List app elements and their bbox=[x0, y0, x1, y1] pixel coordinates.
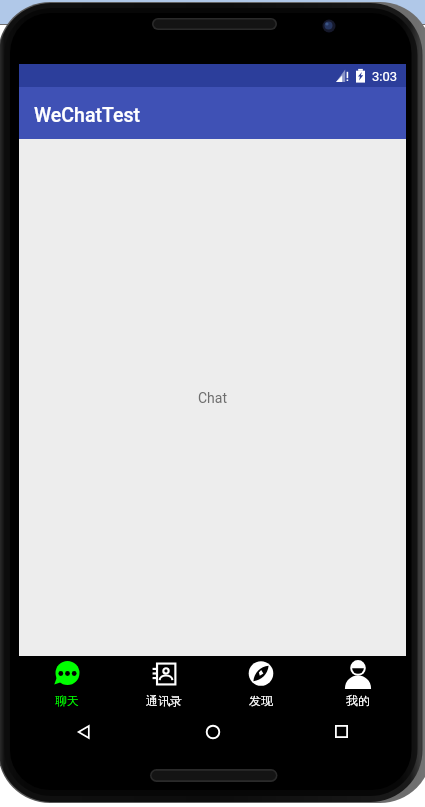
staticText: 聊天 bbox=[55, 693, 79, 708]
button[interactable]: 聊天 bbox=[19, 656, 115, 709]
button[interactable]: Recent apps bbox=[277, 709, 406, 754]
button[interactable]: Home bbox=[148, 709, 277, 754]
staticText: WeChatTest bbox=[34, 104, 140, 127]
staticText: 通讯录 bbox=[146, 693, 182, 708]
staticText: 发现 bbox=[249, 693, 273, 708]
button[interactable]: 发现 bbox=[212, 656, 309, 709]
staticText: 3:03 bbox=[372, 69, 398, 84]
button[interactable]: Back bbox=[19, 709, 148, 754]
staticText: 我的 bbox=[346, 693, 370, 708]
button[interactable]: 通讯录 bbox=[115, 656, 212, 709]
button[interactable]: 我的 bbox=[309, 656, 406, 709]
staticText: Chat bbox=[198, 390, 228, 406]
